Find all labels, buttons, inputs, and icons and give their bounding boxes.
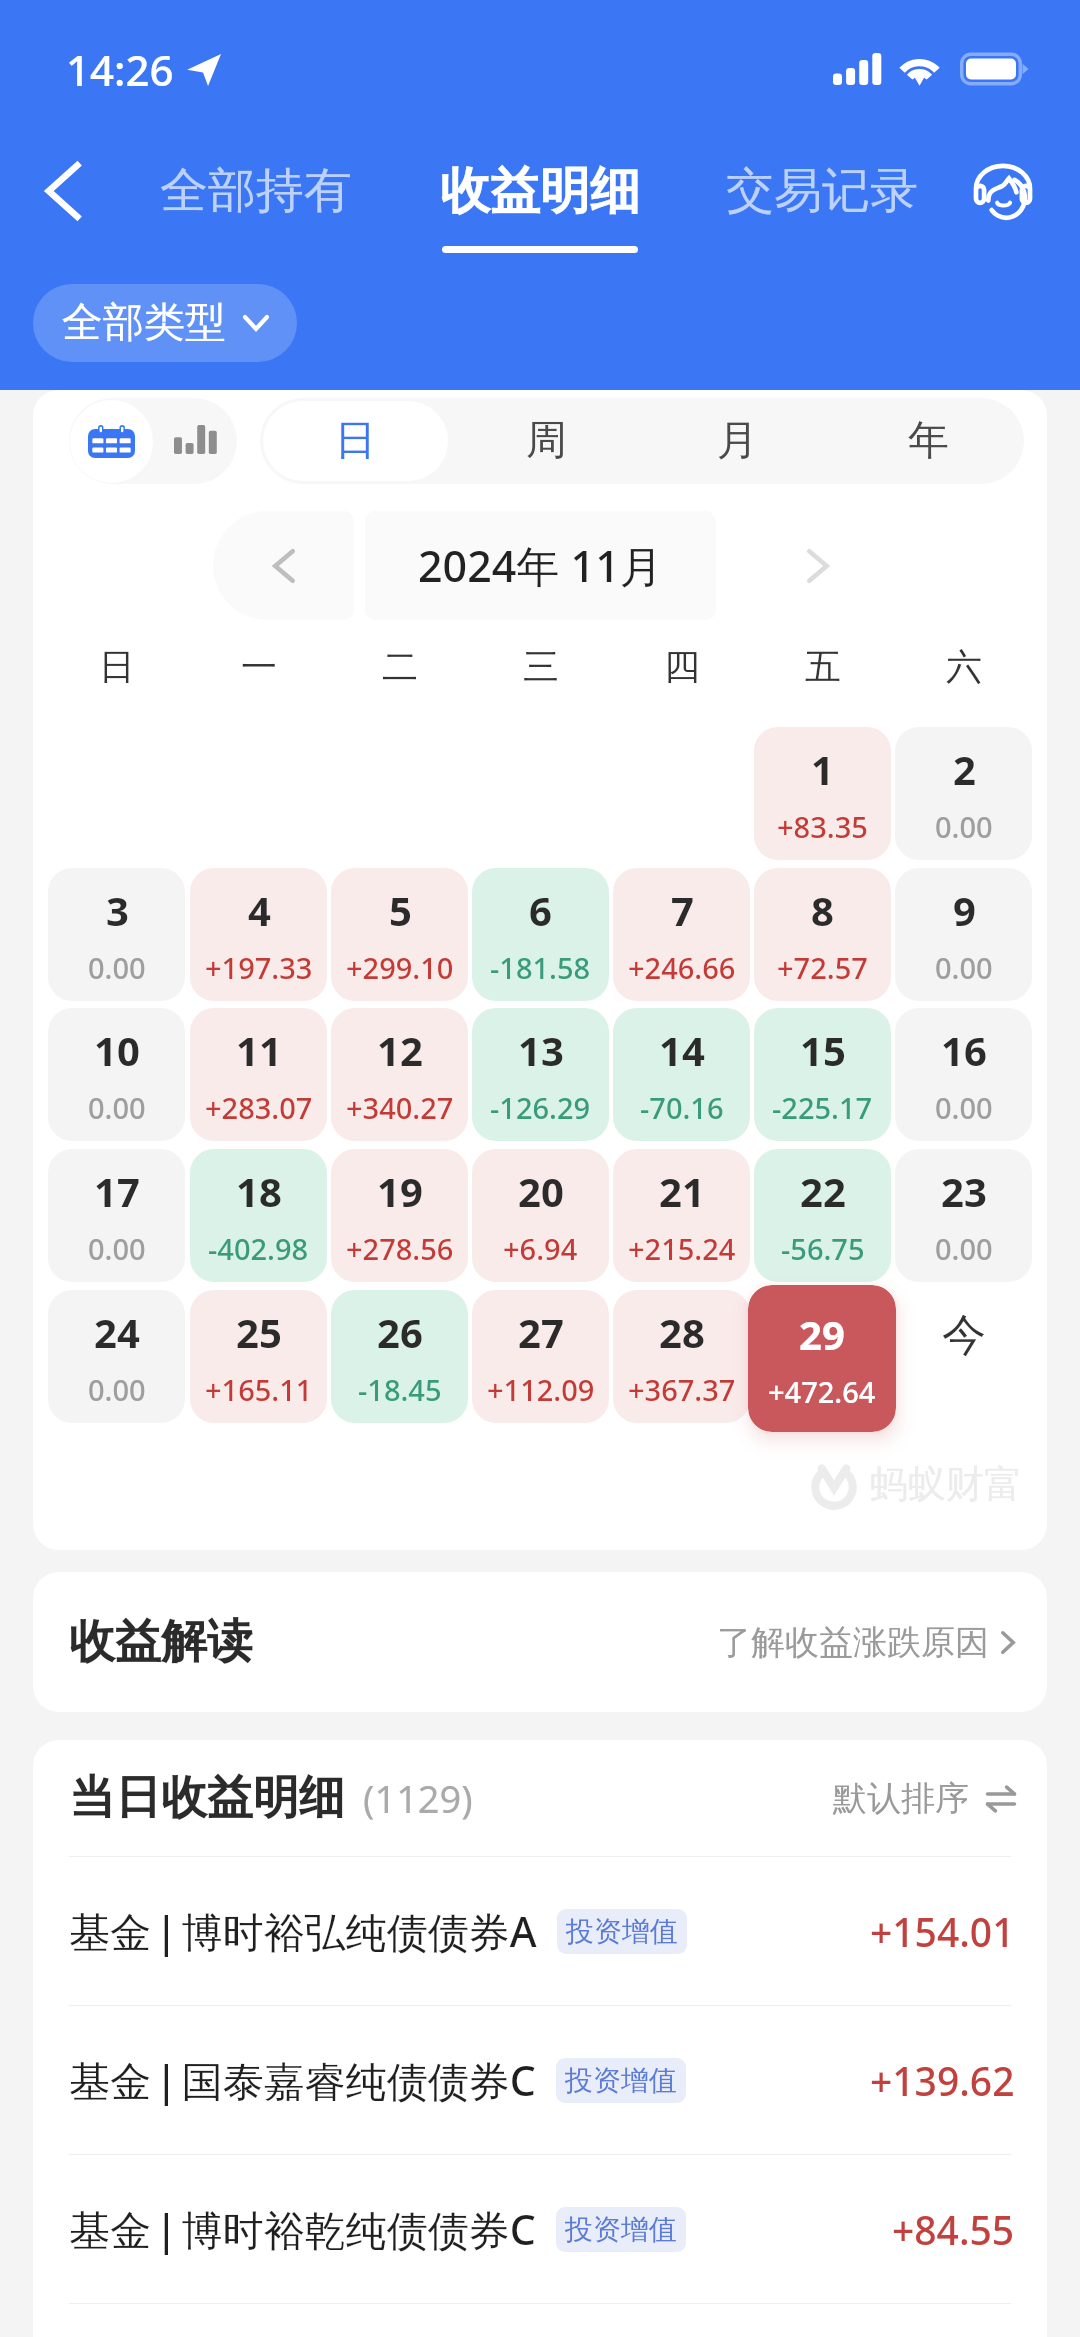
staticText: 1 (811, 742, 834, 796)
staticText: 0.00 (88, 1088, 146, 1127)
button[interactable]: 8 (754, 868, 891, 1001)
button[interactable]: 年 (833, 398, 1024, 484)
button[interactable]: 24 (48, 1290, 185, 1423)
staticText: 15 (800, 1023, 846, 1077)
staticText: 17 (94, 1164, 140, 1218)
button[interactable]: 收益明细 (424, 140, 656, 258)
button[interactable]: Previous month (213, 511, 354, 620)
staticText: +84.55 (892, 2203, 1015, 2256)
staticText: +112.09 (487, 1370, 595, 1409)
button[interactable]: 17 (48, 1149, 185, 1282)
button[interactable]: 默认排序 (833, 1777, 1015, 1820)
button[interactable]: 13 (472, 1008, 609, 1141)
staticText: +139.62 (870, 2054, 1015, 2107)
button[interactable]: 23 (895, 1149, 1032, 1282)
button[interactable]: 14 (613, 1008, 750, 1141)
staticText: 11 (236, 1023, 282, 1077)
button[interactable]: 基金 | 博时裕乾纯债债券C (69, 2155, 1015, 2303)
staticText: -181.58 (490, 948, 591, 987)
button[interactable]: Customer service (948, 136, 1058, 246)
button[interactable]: Back (8, 136, 118, 246)
staticText: 26 (377, 1305, 423, 1359)
staticText: 13 (518, 1023, 564, 1077)
staticText: 五 (805, 644, 841, 689)
button[interactable]: 16 (895, 1008, 1032, 1141)
staticText: 年 (908, 415, 949, 467)
staticText: 9 (953, 883, 976, 937)
staticText: +215.24 (628, 1229, 736, 1268)
button[interactable]: 19 (331, 1149, 468, 1282)
staticText: 5 (389, 883, 412, 937)
staticText: +165.11 (205, 1370, 313, 1409)
staticText: 默认排序 (833, 1777, 969, 1820)
staticText: 当日收益明细 (69, 1769, 345, 1827)
staticText: -70.16 (640, 1088, 724, 1127)
staticText: +367.37 (628, 1370, 736, 1409)
staticText: 日 (335, 415, 376, 467)
button[interactable]: 25 (190, 1290, 327, 1423)
button[interactable]: 2024年 11月 (365, 511, 716, 620)
button[interactable]: 27 (472, 1290, 609, 1423)
staticText: 2024年 11月 (418, 536, 663, 595)
button[interactable]: 12 (331, 1008, 468, 1141)
button[interactable]: 6 (472, 868, 609, 1001)
staticText: 10 (94, 1023, 140, 1077)
staticText: 2 (953, 742, 976, 796)
staticText: +283.07 (205, 1088, 313, 1127)
button[interactable]: 收益解读 (33, 1572, 1047, 1712)
staticText: 基金 | 博时裕弘纯债债券A (69, 1903, 537, 1959)
staticText: 3 (106, 883, 129, 937)
button[interactable]: 10 (48, 1008, 185, 1141)
staticText: 18 (236, 1164, 282, 1218)
button[interactable]: 4 (190, 868, 327, 1001)
button[interactable]: 28 (613, 1290, 750, 1423)
staticText: -56.75 (781, 1229, 865, 1268)
button[interactable]: 2 (895, 727, 1032, 860)
button[interactable]: 全部类型 (33, 284, 297, 362)
staticText: 0.00 (88, 1370, 146, 1409)
button[interactable]: 29 (748, 1285, 896, 1432)
button[interactable]: 日 (263, 401, 448, 481)
button[interactable]: 全部持有 (140, 140, 372, 242)
staticText: 月 (717, 415, 758, 467)
staticText: 20 (518, 1164, 564, 1218)
button[interactable]: 交易记录 (706, 140, 938, 242)
button[interactable]: 1 (754, 727, 891, 860)
staticText: +278.56 (346, 1229, 454, 1268)
button[interactable]: 18 (190, 1149, 327, 1282)
button[interactable]: 21 (613, 1149, 750, 1282)
staticText: 23 (941, 1164, 987, 1218)
button[interactable]: 3 (48, 868, 185, 1001)
button[interactable]: 15 (754, 1008, 891, 1141)
button[interactable]: 26 (331, 1290, 468, 1423)
button[interactable]: 11 (190, 1008, 327, 1141)
button[interactable]: 基金 | 博时裕弘纯债债券A (69, 1857, 1015, 2005)
button[interactable]: Next month (753, 511, 883, 620)
staticText: +154.01 (870, 1905, 1015, 1958)
button[interactable]: 今 (895, 1269, 1032, 1402)
button[interactable]: 月 (642, 398, 833, 484)
button[interactable]: 基金 | 国泰嘉睿纯债债券C (69, 2006, 1015, 2154)
button[interactable]: 5 (331, 868, 468, 1001)
button[interactable]: 20 (472, 1149, 609, 1282)
staticText: (1129) (363, 1772, 473, 1824)
button[interactable]: 22 (754, 1149, 891, 1282)
staticText: 蚂蚁财富 (870, 1460, 1022, 1508)
button[interactable]: 9 (895, 868, 1032, 1001)
staticText: 收益明细 (440, 160, 640, 223)
staticText: 基金 | 博时裕乾纯债债券C (69, 2201, 536, 2257)
button[interactable]: 周 (451, 398, 642, 484)
button[interactable]: 7 (613, 868, 750, 1001)
staticText: +197.33 (205, 948, 313, 987)
button[interactable]: Chart view (154, 398, 237, 481)
staticText: 0.00 (935, 1088, 993, 1127)
staticText: 投资增值 (565, 2063, 677, 2098)
staticText: 基金 | 国泰嘉睿纯债债券C (69, 2052, 536, 2108)
staticText: 24 (94, 1305, 140, 1359)
staticText: 8 (811, 883, 834, 937)
staticText: -18.45 (358, 1370, 442, 1409)
staticText: 28 (659, 1305, 705, 1359)
button[interactable]: Calendar view (70, 400, 153, 483)
staticText: 22 (800, 1164, 846, 1218)
staticText: +6.94 (503, 1229, 578, 1268)
